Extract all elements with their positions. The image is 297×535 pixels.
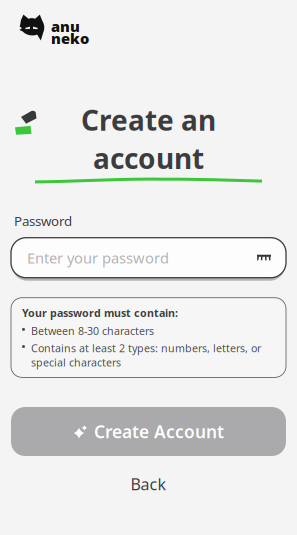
- staticText: account: [93, 139, 204, 177]
- staticText: neko: [51, 28, 89, 48]
- staticText: Between 8-30 characters: [31, 324, 154, 338]
- button[interactable]: Back: [0, 470, 297, 498]
- staticText: Create an: [81, 101, 216, 138]
- button[interactable]: Create Account: [11, 407, 286, 456]
- staticText: Your password must contain:: [22, 306, 178, 320]
- staticText: anu: [51, 16, 80, 36]
- staticText: Enter your password: [27, 248, 169, 267]
- button[interactable]: Enter your password: [11, 238, 286, 281]
- staticText: Create Account: [94, 420, 224, 443]
- staticText: Password: [14, 212, 72, 230]
- staticText: Back: [130, 473, 166, 495]
- staticText: Contains at least 2 types: numbers, lett…: [31, 341, 261, 369]
